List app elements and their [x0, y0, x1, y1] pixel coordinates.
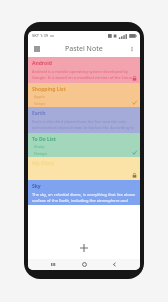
staticText: Sky: [32, 183, 41, 190]
staticText: Earth: [32, 110, 46, 117]
staticText: The sky, an celestial dome, is everythin…: [32, 192, 136, 197]
button[interactable]: Sky: [28, 180, 140, 205]
button[interactable]: Android: [28, 57, 140, 83]
staticText: SKT 1:39: [32, 33, 48, 38]
staticText: Grape: [34, 101, 46, 106]
button[interactable]: Menu: [31, 43, 42, 54]
staticText: Google. It is based on a modified versio…: [32, 75, 132, 80]
button[interactable]: Recents: [48, 259, 59, 270]
staticText: Apple: [34, 94, 45, 99]
button[interactable]: Shopping List: [28, 83, 140, 107]
staticText: Study: [34, 144, 45, 149]
staticText: My Diary: [32, 160, 55, 167]
button[interactable]: Back: [109, 259, 120, 270]
staticText: Shopping List: [32, 86, 66, 93]
staticText: Design: [34, 151, 48, 156]
button[interactable]: Earth: [28, 107, 140, 133]
staticText: astronomical object known to harbor life…: [32, 125, 135, 130]
staticText: Earth is the third planet from the Sun a…: [32, 119, 127, 124]
button[interactable]: Home: [79, 259, 90, 270]
button[interactable]: My Diary: [28, 157, 140, 180]
staticText: surface of the Earth, including the atmo…: [32, 198, 136, 203]
button[interactable]: More options: [126, 43, 137, 54]
button[interactable]: To Do List: [28, 133, 140, 157]
staticText: Android: [32, 60, 52, 67]
staticText: To Do List: [32, 136, 57, 143]
staticText: Pastel Note: [65, 44, 103, 54]
button[interactable]: Add note: [77, 241, 91, 255]
staticText: Android is a mobile operating system dev…: [32, 69, 129, 74]
